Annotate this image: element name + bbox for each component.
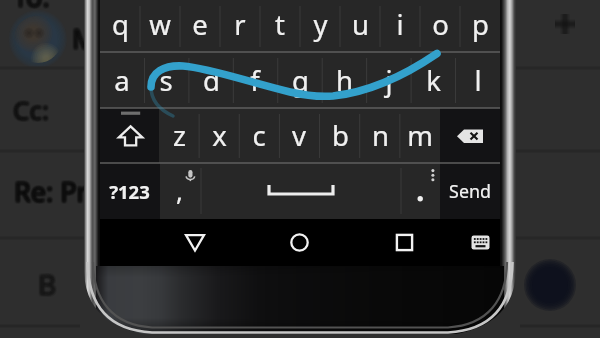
button[interactable]: y [300,0,340,50]
button[interactable]: h [322,52,366,108]
staticText: Re: Pr [14,174,88,211]
staticText: M [71,19,96,56]
button[interactable]: t [260,0,300,50]
staticText: To: [11,0,48,16]
button[interactable]: q [100,0,140,50]
staticText: r [234,6,246,43]
staticText: Cc: [14,94,50,129]
staticText: To: [15,0,52,14]
staticText: To: [15,0,52,13]
button[interactable]: f [233,52,277,108]
staticText: B [39,266,58,304]
staticText: M [71,22,96,59]
staticText: Cc: [11,93,47,128]
staticText: To: [14,0,51,17]
staticText: To: [14,0,51,13]
button[interactable]: Recents [370,219,440,266]
staticText: Re: Pr [13,172,87,209]
button[interactable]: c [239,108,279,163]
staticText: To: [11,0,48,13]
staticText: To: [14,0,51,16]
staticText: B [38,266,57,304]
staticText: g [292,62,309,99]
staticText: M [72,18,97,55]
button[interactable]: r [220,0,260,50]
staticText: h [336,62,353,99]
staticText: B [36,266,55,304]
staticText: M [74,21,99,58]
staticText: B [40,264,59,302]
button[interactable]: , [159,169,200,211]
staticText: M [71,21,96,58]
staticText: Cc: [12,94,48,129]
staticText: Cc: [12,91,48,126]
button[interactable]: g [278,52,322,108]
button[interactable]: Send [440,164,500,218]
staticText: Cc: [13,92,49,127]
button[interactable]: Home [265,219,335,266]
staticText: To: [12,0,49,17]
staticText: Re: Pr [16,173,90,210]
button[interactable]: Shift [100,108,159,163]
staticText: Cc: [13,94,49,129]
staticText: B [38,265,57,303]
staticText: Re: Pr [13,171,87,208]
button[interactable]: Space [201,163,401,219]
button[interactable]: Period [401,163,440,219]
button[interactable]: l [456,52,500,108]
button[interactable]: o [420,0,460,50]
button[interactable]: z [159,108,199,163]
staticText: M [70,18,95,55]
button[interactable]: v [279,108,319,163]
staticText: Cc: [14,91,50,126]
staticText: B [37,265,56,303]
button[interactable]: k [411,52,455,108]
button[interactable]: d [189,52,233,108]
button[interactable]: e [180,0,220,50]
button[interactable]: Backspace [440,108,500,163]
button[interactable]: i [380,0,420,50]
staticText: To: [15,0,52,16]
button[interactable]: m [400,108,440,163]
staticText: Send [449,179,491,203]
button[interactable]: s [144,52,188,108]
button[interactable]: ?123 [100,165,159,218]
button[interactable]: x [199,108,239,163]
staticText: Re: Pr [14,175,88,212]
staticText: To: [13,0,50,16]
staticText: M [70,22,95,59]
staticText: w [149,6,171,43]
button[interactable]: p [460,0,500,50]
staticText: Re: Pr [15,172,89,209]
staticText: To: [13,0,50,15]
staticText: z [173,117,186,154]
staticText: Re: Pr [12,171,86,208]
staticText: Cc: [11,92,47,127]
staticText: B [36,267,55,305]
button[interactable]: Voice input [160,163,201,219]
staticText: Cc: [11,94,47,129]
staticText: Re: Pr [13,174,87,211]
button[interactable]: u [340,0,380,50]
staticText: f [250,62,260,99]
staticText: M [70,21,95,58]
button[interactable]: n [360,108,400,163]
staticText: M [72,19,97,56]
staticText: Cc: [12,92,48,127]
staticText: M [71,20,96,57]
staticText: Re: Pr [16,174,90,211]
button[interactable]: Hide keyboard [455,219,500,266]
staticText: a [114,62,130,99]
staticText: u [352,6,369,43]
staticText: To: [12,0,49,15]
staticText: k [426,62,441,99]
staticText: o [432,6,449,43]
staticText: M [73,18,98,55]
button[interactable]: j [367,52,411,108]
button[interactable]: b [320,108,360,163]
button[interactable]: a [100,52,144,108]
staticText: Re: Pr [16,172,90,209]
staticText: q [112,6,129,43]
button[interactable]: w [140,0,180,50]
button[interactable]: Back [160,219,230,266]
